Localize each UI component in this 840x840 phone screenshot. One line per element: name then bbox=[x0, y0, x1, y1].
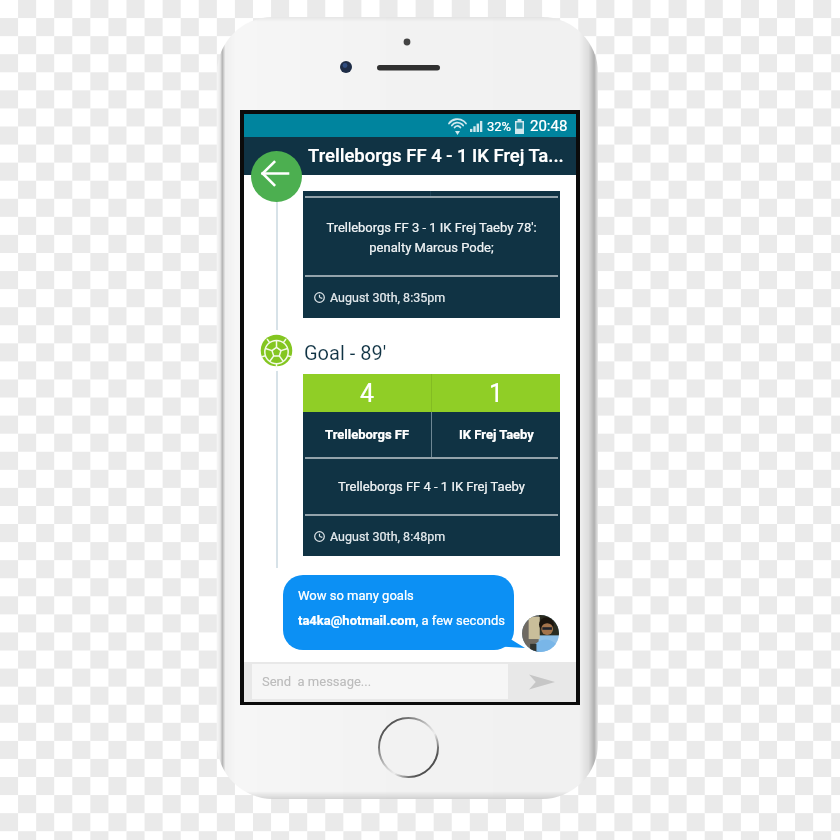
button[interactable]: Back bbox=[251, 151, 302, 202]
staticText: August 30th, 8:35pm bbox=[330, 290, 446, 305]
staticText: Send a message... bbox=[262, 674, 372, 689]
button[interactable]: 4 bbox=[303, 374, 560, 556]
button[interactable]: Trelleborgs FF 3 - 1 IK Frej Taeby 78': … bbox=[303, 191, 560, 318]
staticText: ta4ka@hotmail.com, a few seconds ago bbox=[298, 613, 514, 628]
button[interactable]: Send a message... bbox=[252, 664, 508, 699]
staticText: Trelleborgs FF 4 - 1 IK Frej Taeby bbox=[338, 479, 525, 494]
staticText: 1 bbox=[489, 379, 504, 408]
button[interactable]: Trelleborgs FF 4 - 1 IK Frej Ta... bbox=[244, 137, 576, 175]
staticText: August 30th, 8:48pm bbox=[330, 529, 446, 544]
staticText: Trelleborgs FF 3 - 1 IK Frej Taeby 78': … bbox=[326, 220, 537, 255]
staticText: 4 bbox=[360, 379, 375, 408]
staticText: Goal - 89' bbox=[304, 341, 387, 364]
staticText: 20:48 bbox=[530, 117, 568, 135]
staticText: Trelleborgs FF 4 - 1 IK Frej Ta... bbox=[308, 145, 564, 167]
staticText: IK Frej Taeby bbox=[459, 427, 534, 442]
staticText: 32% bbox=[487, 119, 512, 134]
staticText: Wow so many goals bbox=[298, 588, 414, 603]
button[interactable]: Wow so many goals bbox=[283, 575, 514, 650]
button[interactable]: Send bbox=[508, 662, 576, 702]
staticText: Trelleborgs FF bbox=[325, 427, 410, 442]
